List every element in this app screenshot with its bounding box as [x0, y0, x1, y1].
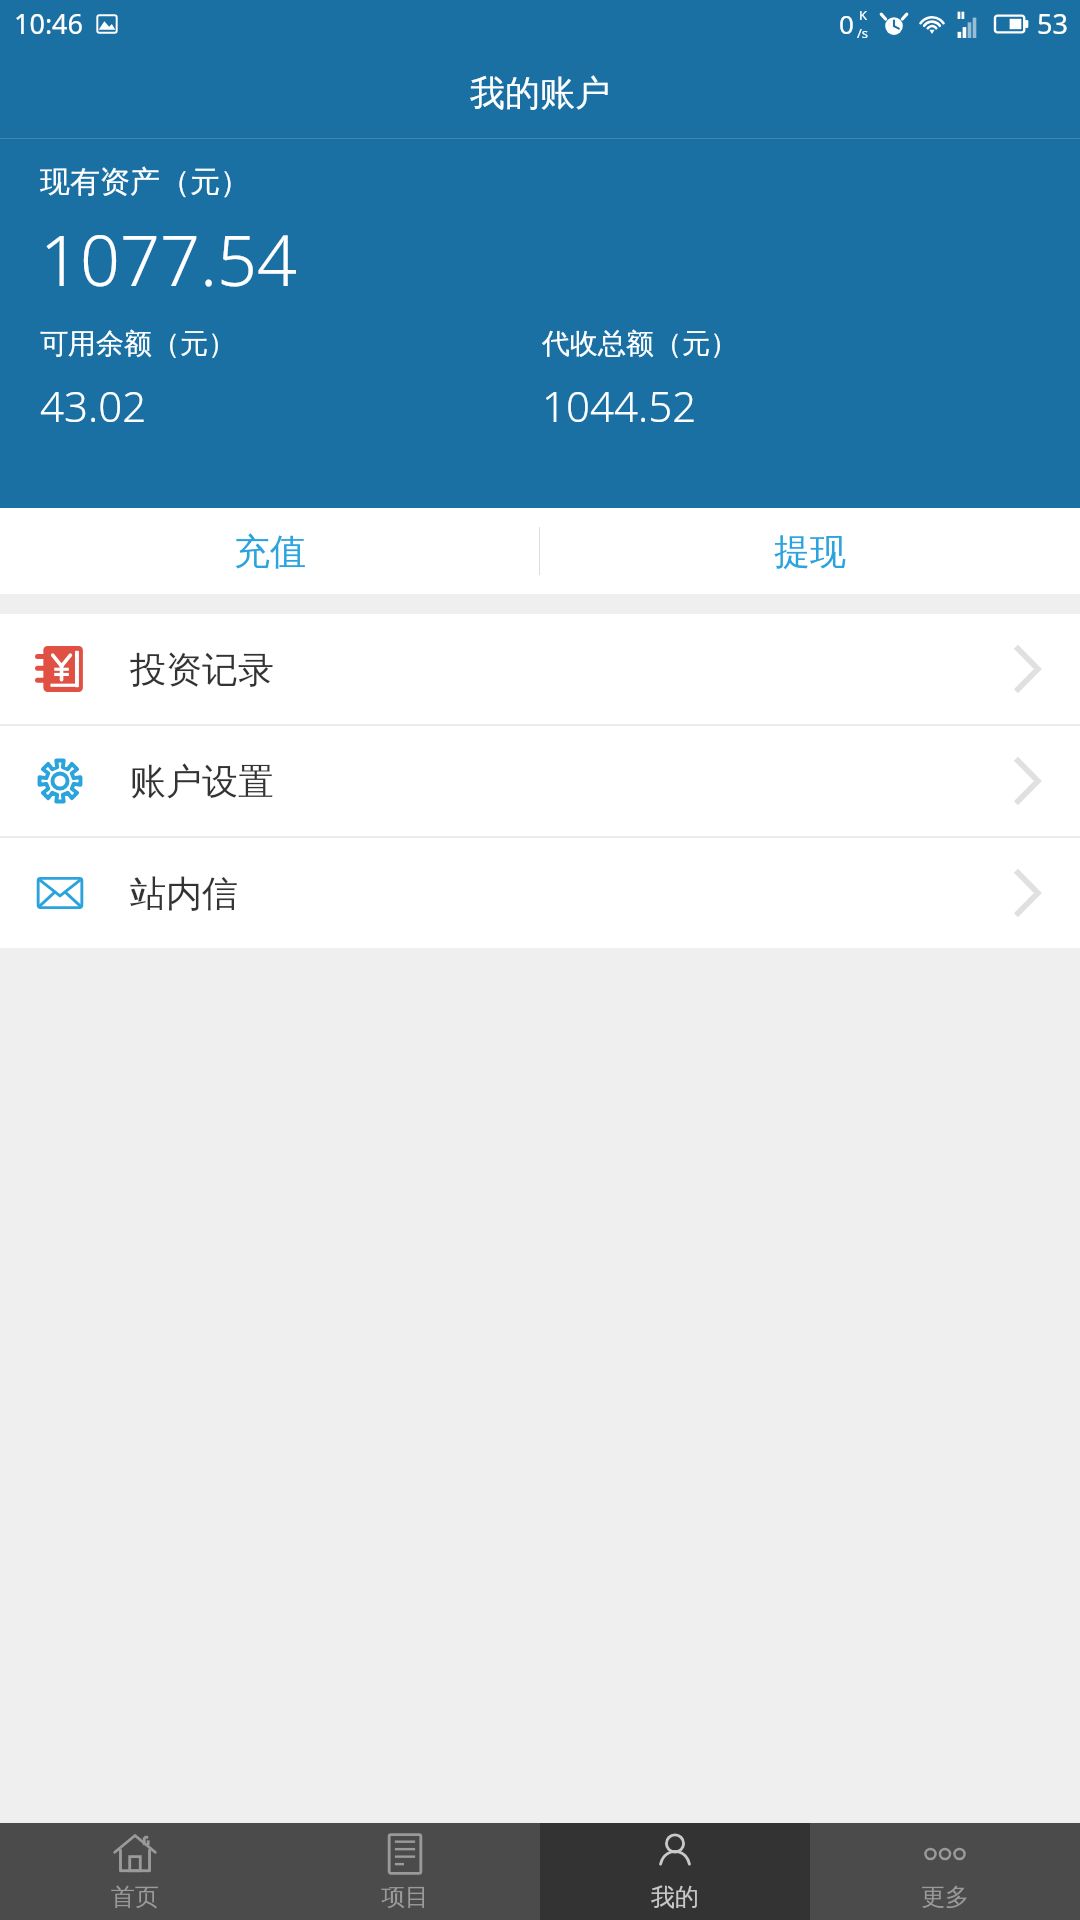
staticText: 提现	[774, 529, 846, 574]
staticText: 项目	[381, 1882, 429, 1912]
button[interactable]: 项目	[270, 1823, 540, 1920]
staticText: 账户设置	[130, 759, 274, 804]
staticText: 43.02	[40, 377, 147, 434]
staticText: K	[859, 6, 868, 24]
button[interactable]: 提现	[540, 508, 1080, 594]
staticText: 1077.54	[40, 211, 297, 306]
staticText: 10:46	[14, 5, 84, 42]
staticText: 更多	[921, 1882, 969, 1912]
staticText: 代收总额（元）	[542, 326, 738, 361]
staticText: 站内信	[130, 871, 238, 916]
staticText: 我的账户	[470, 71, 610, 115]
staticText: 53	[1037, 5, 1068, 42]
button[interactable]: 首页	[0, 1823, 270, 1920]
button[interactable]: 更多	[810, 1823, 1080, 1920]
staticText: 可用余额（元）	[40, 326, 236, 361]
button[interactable]: 充值	[0, 508, 539, 594]
staticText: 1044.52	[542, 377, 697, 434]
button[interactable]: 我的	[540, 1823, 810, 1920]
button[interactable]: 站内信	[0, 838, 1080, 948]
staticText: 充值	[234, 529, 306, 574]
button[interactable]: 投资记录	[0, 614, 1080, 724]
staticText: 0	[839, 6, 854, 41]
button[interactable]: 账户设置	[0, 726, 1080, 836]
staticText: 我的	[651, 1882, 699, 1912]
staticText: /s	[857, 24, 869, 42]
staticText: 现有资产（元）	[40, 163, 250, 201]
staticText: 首页	[111, 1882, 159, 1912]
staticText: 投资记录	[130, 647, 274, 692]
